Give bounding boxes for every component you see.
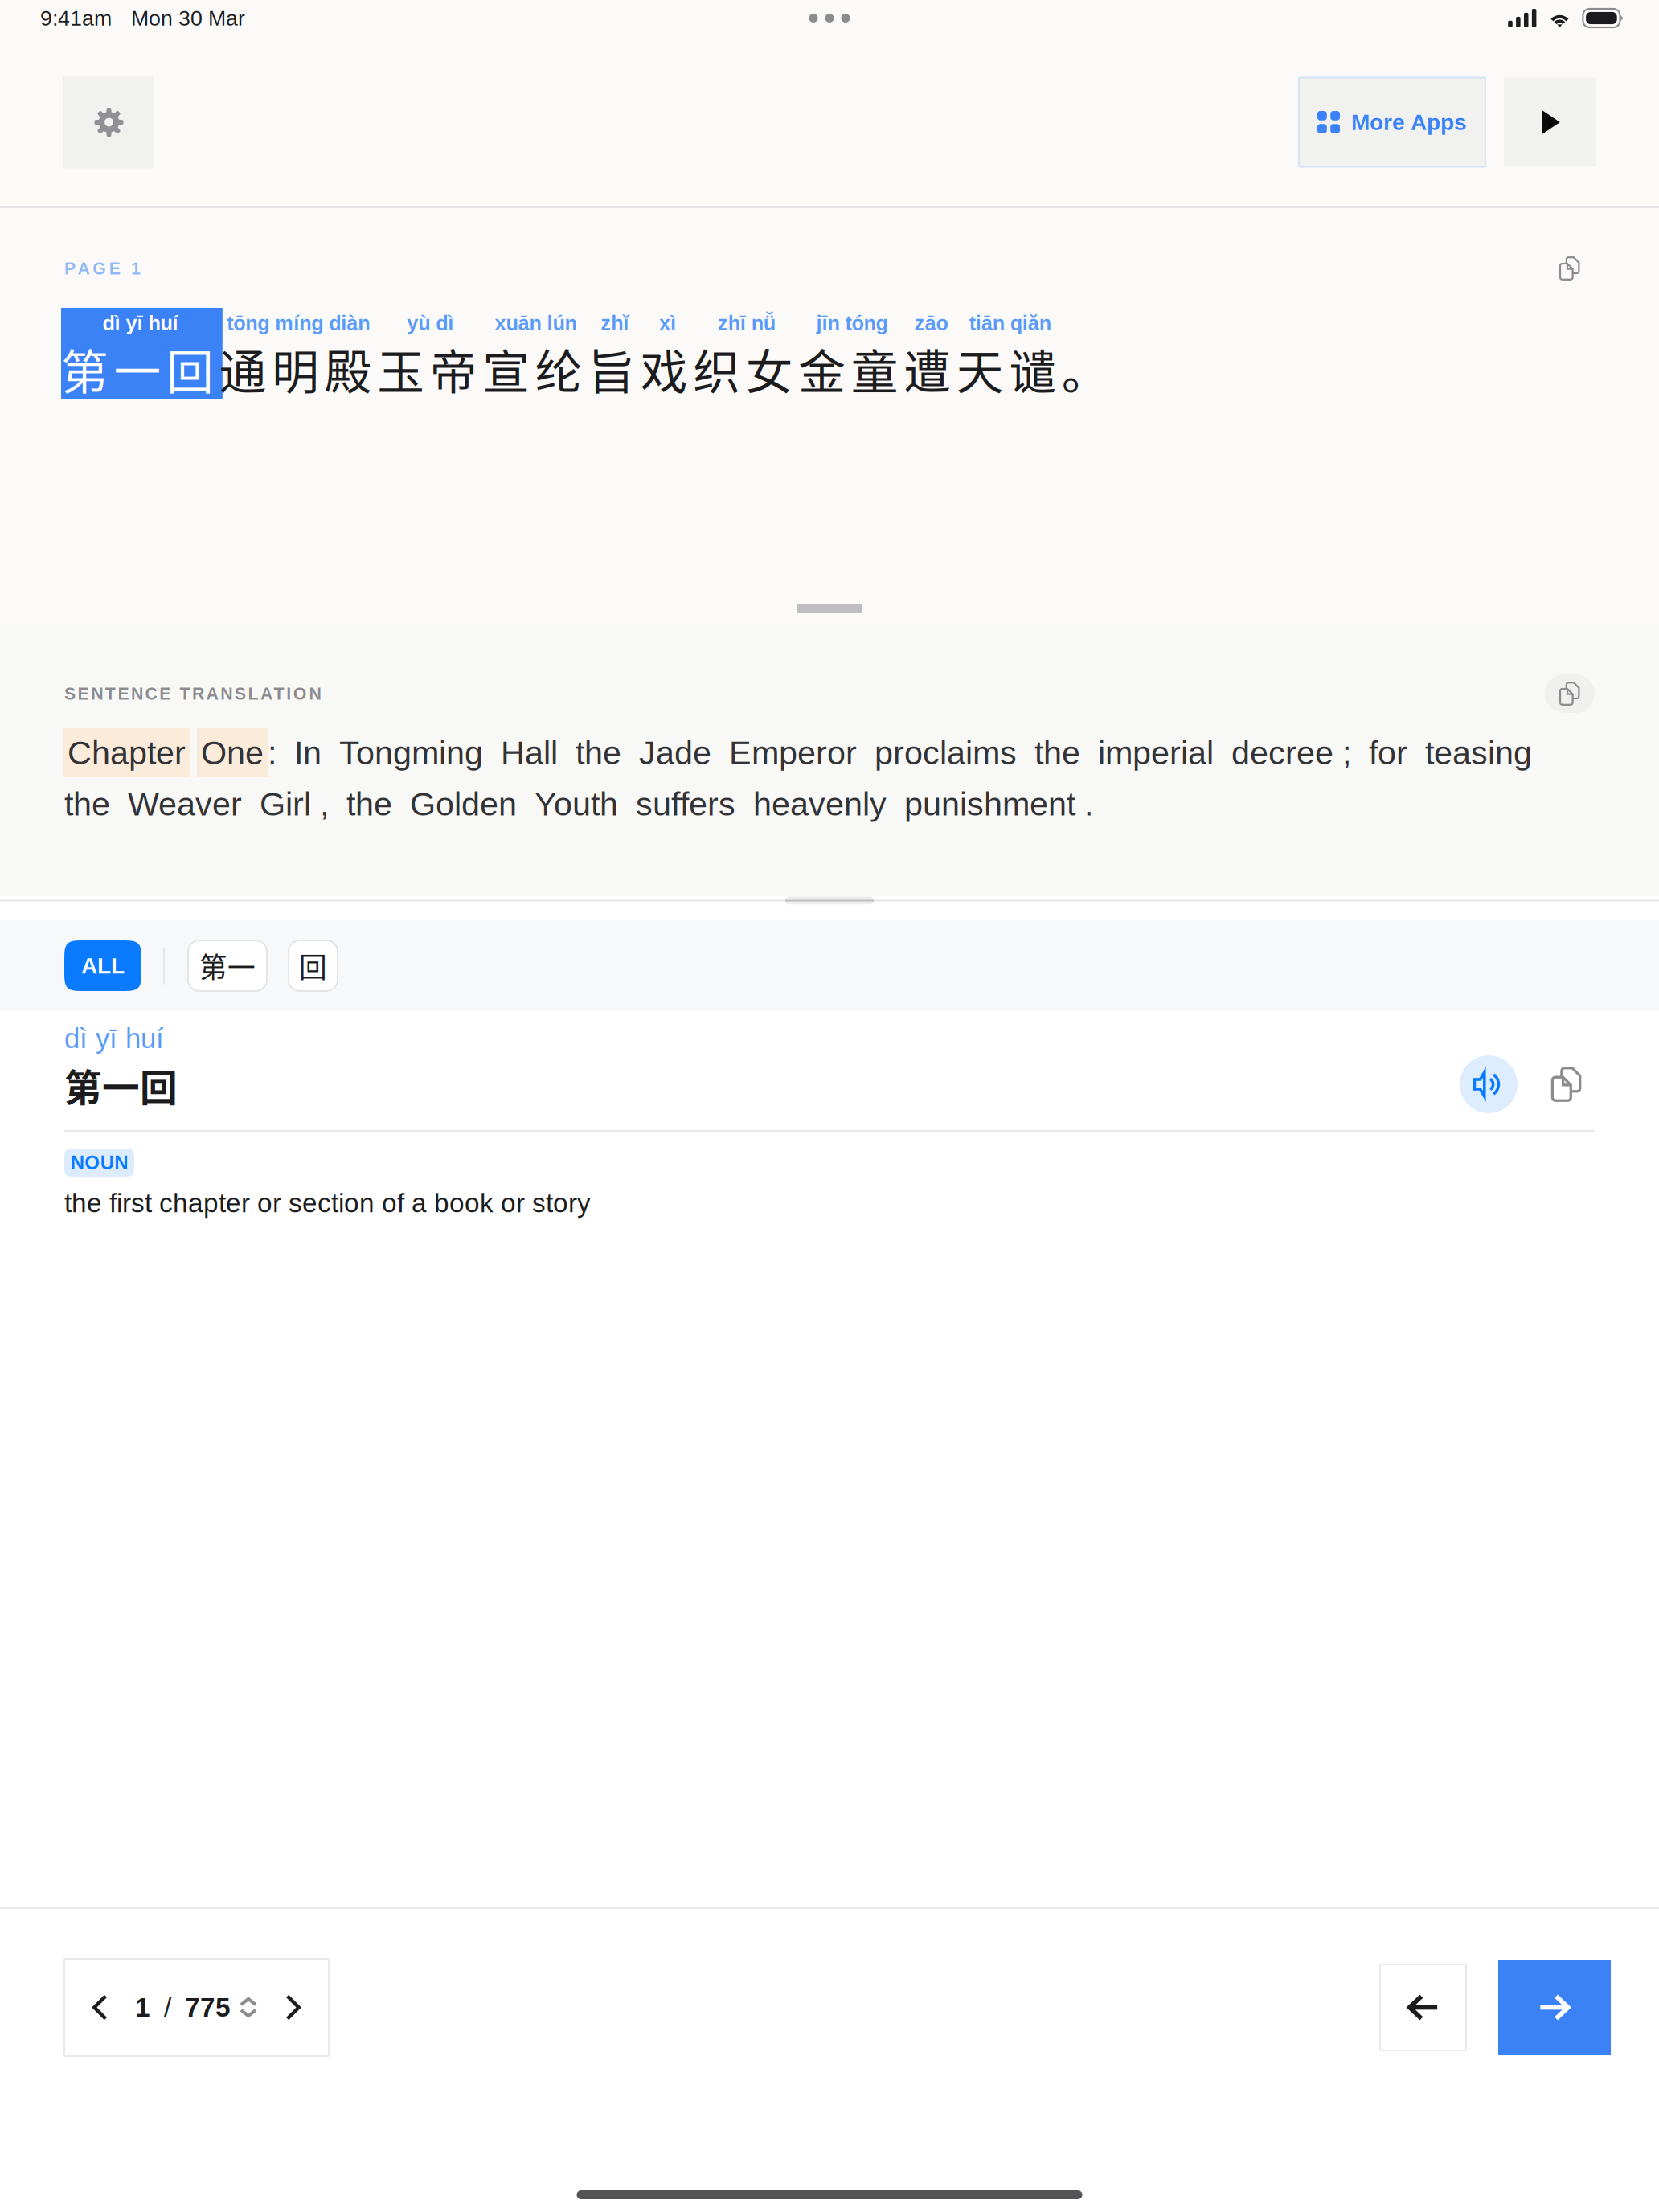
staticText: 775	[185, 1992, 231, 2022]
staticText: 第一回	[64, 1058, 178, 1112]
staticText: yù dì	[407, 312, 453, 334]
staticText: Mon 30 Mar	[131, 6, 245, 30]
staticText: zhī nǚ	[718, 312, 775, 334]
button[interactable]: Play	[1504, 78, 1596, 167]
staticText: xuān lún	[495, 312, 577, 334]
button[interactable]: Settings	[63, 76, 154, 168]
staticText: jīn tóng	[816, 312, 888, 334]
button[interactable]: 第一	[188, 940, 267, 991]
staticText: NOUN	[71, 1152, 128, 1173]
staticText: More Apps	[1351, 110, 1467, 135]
button[interactable]: 回	[289, 940, 338, 991]
staticText: zhǐ	[601, 312, 629, 334]
staticText: 第一回	[61, 335, 214, 403]
staticText: 第一	[199, 946, 256, 986]
button[interactable]: Previous page	[76, 1959, 125, 2056]
button[interactable]: ALL	[64, 940, 141, 991]
button[interactable]: More Apps	[1299, 78, 1485, 167]
staticText: SENTENCE TRANSLATION	[64, 684, 321, 703]
staticText: /	[164, 1992, 171, 2022]
staticText: 9:41am	[40, 6, 112, 30]
staticText: : In Tongming Hall the Jade Emperor proc…	[268, 734, 1532, 771]
staticText: dì yī huí	[64, 1023, 164, 1054]
staticText: One	[201, 734, 264, 771]
staticText: dì yī huí	[102, 312, 178, 334]
staticText: 通明殿玉帝宣纶旨戏织女金童遭天谴。	[219, 335, 1109, 403]
button[interactable]: Forward	[1498, 1960, 1611, 2055]
button[interactable]: Next page	[268, 1959, 317, 2056]
button[interactable]: Copy translation	[1545, 674, 1595, 713]
staticText: PAGE 1	[64, 259, 141, 278]
staticText: Chapter	[68, 734, 186, 771]
staticText: tiān qiǎn	[969, 312, 1051, 334]
staticText: tōng míng diàn	[227, 312, 370, 334]
staticText: the Weaver Girl , the Golden Youth suffe…	[64, 785, 1093, 822]
button[interactable]: Back	[1380, 1964, 1466, 2050]
button[interactable]: Play audio	[1460, 1022, 1518, 1113]
staticText: xì	[659, 312, 676, 334]
staticText: zāo	[914, 312, 948, 334]
button[interactable]: Copy sentence	[1546, 250, 1594, 287]
staticText: the first chapter or section of a book o…	[64, 1188, 591, 1218]
staticText: ALL	[81, 953, 125, 978]
staticText: 回	[299, 946, 327, 986]
button[interactable]: Copy word	[1544, 1022, 1589, 1113]
staticText: 1	[135, 1992, 150, 2022]
